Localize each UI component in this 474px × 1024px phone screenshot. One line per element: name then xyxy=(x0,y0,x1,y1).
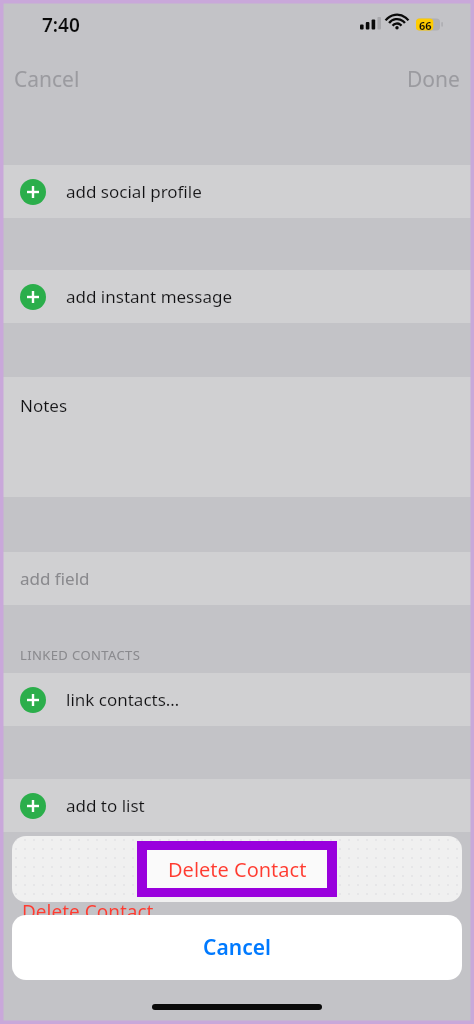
staticText: add instant message xyxy=(66,285,232,308)
button[interactable]: link contacts… xyxy=(0,673,474,726)
staticText: 66 xyxy=(419,18,432,33)
button[interactable]: Cancel xyxy=(12,915,462,980)
staticText: add to list xyxy=(66,794,145,817)
button[interactable]: add social profile xyxy=(0,165,474,218)
button[interactable]: Notes xyxy=(0,377,474,497)
staticText: Cancel xyxy=(14,65,80,94)
button[interactable] xyxy=(12,836,462,902)
staticText: LINKED CONTACTS xyxy=(20,646,141,664)
button[interactable]: Delete Contact xyxy=(137,841,337,897)
staticText: Done xyxy=(407,65,460,94)
staticText: Delete Contact xyxy=(22,899,154,925)
staticText: add social profile xyxy=(66,180,202,203)
button[interactable]: add field xyxy=(0,552,474,605)
staticText: 7:40 xyxy=(42,12,80,38)
staticText: add field xyxy=(20,567,90,590)
button[interactable]: Done xyxy=(393,57,474,102)
staticText: Delete Contact xyxy=(168,856,307,883)
staticText: link contacts… xyxy=(66,688,180,711)
button[interactable]: add to list xyxy=(0,779,474,832)
button[interactable]: add instant message xyxy=(0,270,474,323)
staticText: Notes xyxy=(20,394,68,417)
staticText: Cancel xyxy=(203,933,271,962)
button[interactable]: Cancel xyxy=(0,57,94,102)
